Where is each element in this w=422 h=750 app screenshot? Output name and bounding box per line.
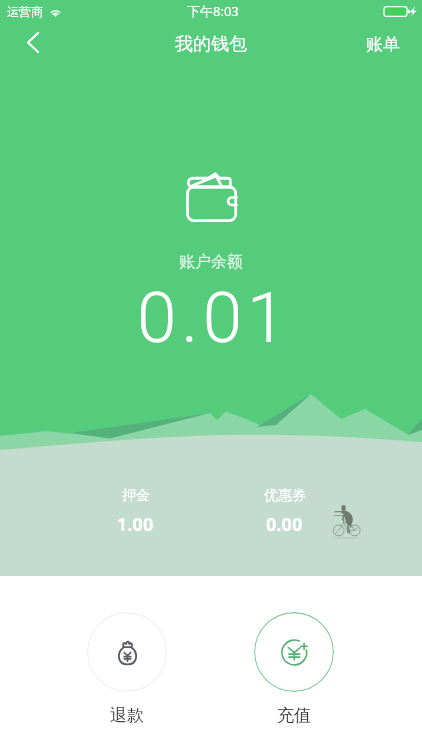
- staticText: 0.01: [3, 276, 422, 359]
- staticText: 押金: [122, 487, 150, 505]
- staticText: 1.00: [117, 514, 154, 535]
- staticText: 退款: [110, 705, 144, 726]
- staticText: 账户余额: [0, 252, 422, 272]
- button[interactable]: 押金: [95, 487, 176, 535]
- button[interactable]: Back: [0, 22, 62, 66]
- staticText: 账单: [366, 34, 400, 55]
- button[interactable]: 优惠券: [244, 487, 325, 535]
- button[interactable]: 账单: [344, 22, 422, 66]
- staticText: 优惠券: [264, 487, 306, 505]
- staticText: 充值: [277, 705, 311, 726]
- staticText: 运营商: [7, 4, 43, 19]
- staticText: 我的钱包: [175, 33, 247, 56]
- button[interactable]: 充值: [254, 612, 334, 726]
- staticText: 0.00: [266, 514, 303, 535]
- button[interactable]: 退款: [87, 612, 167, 726]
- staticText: 下午8:03: [187, 2, 239, 20]
